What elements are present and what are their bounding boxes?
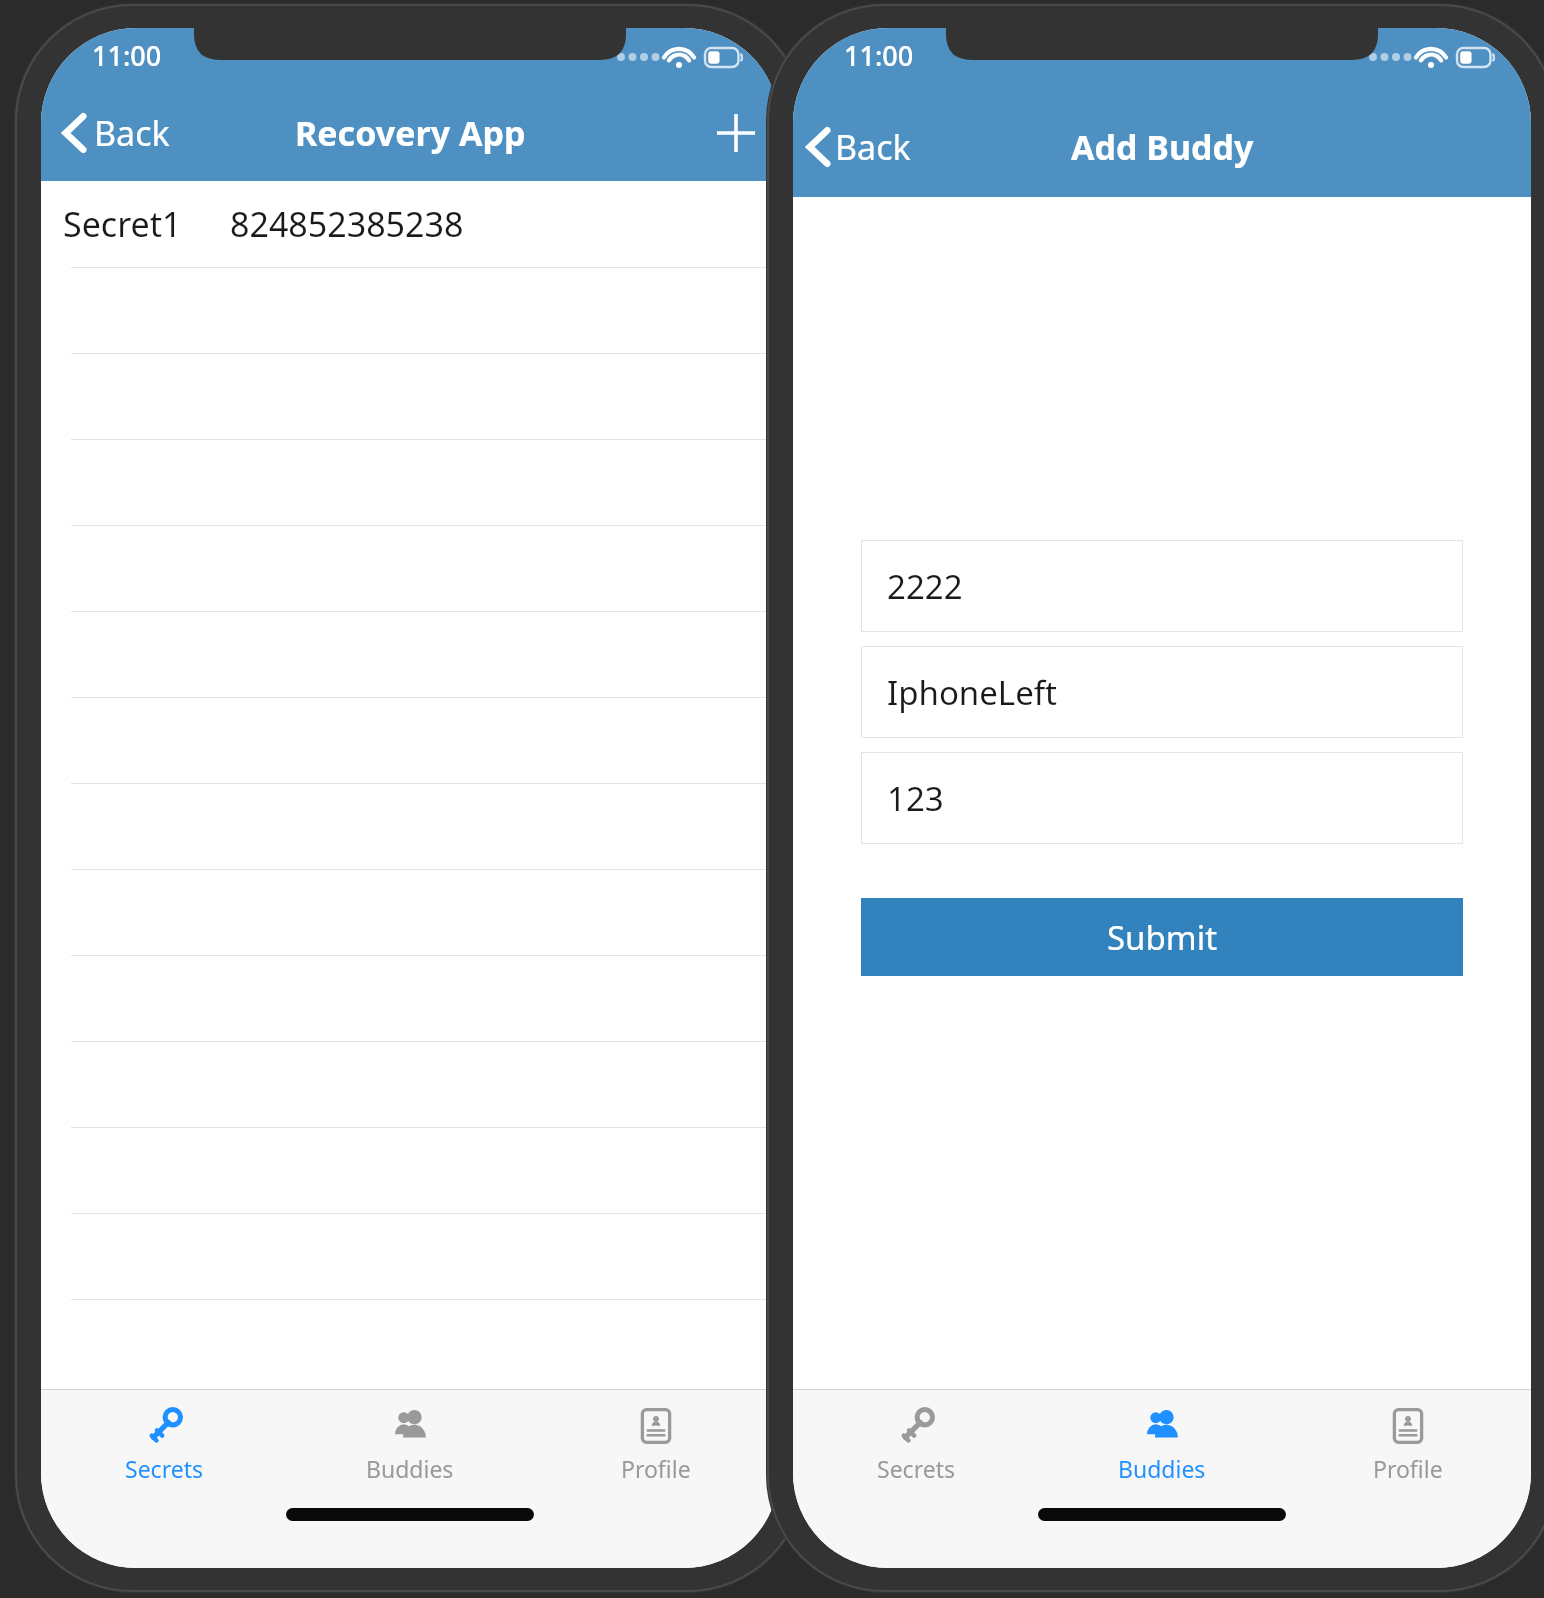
button[interactable]: Secrets (41, 1390, 287, 1486)
staticText: Recovery App (295, 110, 526, 156)
staticText: 2222 (887, 564, 963, 609)
staticText: 824852385238 (230, 201, 464, 247)
button[interactable]: Secrets (793, 1390, 1039, 1486)
staticText: Secret1 (63, 201, 182, 247)
staticText: Add Buddy (1071, 124, 1254, 170)
staticText: Buddies (366, 1453, 454, 1484)
staticText: Profile (621, 1453, 691, 1484)
button[interactable]: Back (41, 102, 182, 164)
staticText: Secrets (877, 1453, 955, 1484)
staticText: 11:00 (92, 37, 162, 74)
staticText: 123 (887, 776, 944, 821)
staticText: Submit (1107, 915, 1218, 960)
button[interactable]: 123 (861, 752, 1463, 844)
staticText: Secrets (125, 1453, 203, 1484)
button[interactable]: 2222 (861, 540, 1463, 632)
staticText: Profile (1373, 1453, 1443, 1484)
button[interactable]: Add secret (693, 100, 779, 166)
button[interactable]: IphoneLeft (861, 646, 1463, 738)
staticText: IphoneLeft (887, 670, 1058, 715)
staticText: Buddies (1118, 1453, 1206, 1484)
button[interactable]: Buddies (287, 1390, 533, 1486)
staticText: Back (94, 110, 170, 156)
staticText: Back (835, 124, 911, 170)
button[interactable]: Buddies (1039, 1390, 1285, 1486)
button[interactable]: Secret1 (41, 181, 779, 267)
button[interactable]: Profile (533, 1390, 779, 1486)
button[interactable]: Back (793, 116, 923, 178)
button[interactable]: Profile (1285, 1390, 1531, 1486)
staticText: 11:00 (844, 37, 914, 74)
button[interactable]: Submit (861, 898, 1463, 976)
